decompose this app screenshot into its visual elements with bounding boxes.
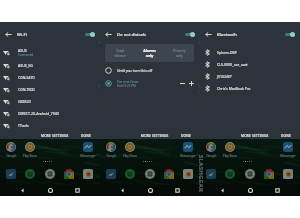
button[interactable]: Alarms only bbox=[134, 44, 164, 62]
button[interactable]: Home bbox=[246, 186, 255, 195]
button[interactable]: ASUS bbox=[0, 45, 100, 59]
button[interactable]: GSB523 bbox=[0, 95, 100, 107]
button[interactable]: Spotify bbox=[20, 167, 40, 181]
button[interactable]: Twitter bbox=[1, 167, 21, 181]
staticText: ASUS_5G bbox=[18, 63, 33, 68]
button[interactable]: Google bbox=[101, 142, 121, 158]
button[interactable]: Decrease bbox=[178, 79, 187, 88]
staticText: DONE bbox=[281, 134, 291, 138]
staticText: CGN-7600 bbox=[18, 87, 35, 92]
staticText: Google bbox=[106, 154, 117, 158]
button[interactable]: Back bbox=[218, 186, 227, 195]
button[interactable]: Camera bbox=[278, 167, 298, 181]
button[interactable]: Chrome bbox=[159, 167, 179, 181]
button[interactable]: CLS-0900_nar_uart bbox=[200, 58, 300, 70]
button[interactable]: Camera bbox=[78, 167, 98, 181]
staticText: CGN-5470 bbox=[18, 75, 35, 80]
button[interactable]: Until you turn this off bbox=[100, 64, 200, 77]
staticText: For one hour bbox=[117, 79, 139, 84]
button[interactable]: Messenger bbox=[278, 142, 298, 158]
staticText: JS1024E7 bbox=[217, 74, 232, 79]
button[interactable]: Spotify bbox=[120, 167, 140, 181]
button[interactable]: Google bbox=[1, 142, 21, 158]
staticText: Google bbox=[206, 154, 217, 158]
button[interactable]: Back bbox=[202, 28, 214, 40]
staticText: Play Store bbox=[123, 154, 137, 158]
button[interactable]: All apps bbox=[140, 167, 160, 181]
button[interactable]: Camera bbox=[178, 167, 198, 181]
button[interactable]: Twitter bbox=[101, 167, 121, 181]
staticText: MORE SETTINGS bbox=[241, 134, 269, 138]
button[interactable]: Priority only bbox=[164, 44, 194, 62]
button[interactable]: All apps bbox=[40, 167, 60, 181]
button[interactable]: Toggle bbox=[185, 31, 195, 37]
button[interactable]: For one hour bbox=[100, 77, 200, 90]
button[interactable]: MORE SETTINGS bbox=[239, 131, 271, 141]
button[interactable]: MORE SETTINGS bbox=[139, 131, 171, 141]
staticText: Play Store bbox=[23, 154, 37, 158]
button[interactable]: DONE bbox=[79, 131, 93, 141]
button[interactable]: Messenger bbox=[178, 142, 198, 158]
staticText: Messenger bbox=[280, 154, 296, 158]
button[interactable]: Recents bbox=[73, 186, 82, 195]
staticText: MORE SETTINGS bbox=[41, 134, 69, 138]
staticText: Connected bbox=[18, 53, 34, 57]
staticText: Google bbox=[6, 154, 17, 158]
button[interactable]: CGN-7600 bbox=[0, 83, 100, 95]
staticText: ASUS bbox=[18, 48, 27, 53]
button[interactable]: Back bbox=[102, 28, 114, 40]
staticText: Until you turn this off bbox=[117, 68, 153, 73]
button[interactable]: Home bbox=[146, 186, 155, 195]
button[interactable]: Toggle bbox=[285, 31, 295, 37]
button[interactable]: Sphero-ORP bbox=[200, 46, 300, 58]
button[interactable]: Chrome bbox=[259, 167, 279, 181]
button[interactable]: Chrome bbox=[59, 167, 79, 181]
button[interactable]: Messenger bbox=[78, 142, 98, 158]
staticText: MORE SETTINGS bbox=[141, 134, 169, 138]
staticText: Alarms only bbox=[143, 48, 156, 58]
staticText: Priority only bbox=[173, 48, 186, 58]
button[interactable]: DONE bbox=[179, 131, 193, 141]
button[interactable]: DIRECT-20-Android_7940 bbox=[0, 107, 100, 119]
staticText: TTwrls bbox=[18, 123, 29, 128]
staticText: Messenger bbox=[180, 154, 196, 158]
staticText: Do not disturb bbox=[117, 32, 146, 38]
staticText: DONE bbox=[81, 134, 91, 138]
button[interactable]: Recents bbox=[273, 186, 282, 195]
staticText: SLASHGEAR bbox=[197, 155, 205, 193]
staticText: Until 5:23 PM bbox=[117, 84, 136, 88]
button[interactable]: Back bbox=[18, 186, 27, 195]
button[interactable]: All apps bbox=[240, 167, 260, 181]
staticText: Wi-Fi bbox=[17, 32, 27, 38]
button[interactable]: ASUS_5G bbox=[0, 59, 100, 71]
staticText: Chris's MacBook Pro bbox=[217, 86, 251, 91]
button[interactable]: Play Store bbox=[120, 142, 140, 158]
button[interactable]: Home bbox=[46, 186, 55, 195]
staticText: DIRECT-20-Android_7940 bbox=[18, 111, 59, 116]
staticText: Messenger bbox=[80, 154, 96, 158]
button[interactable]: TTwrls bbox=[0, 119, 100, 131]
staticText: Bluetooth bbox=[217, 32, 237, 38]
staticText: Total silence bbox=[114, 48, 126, 58]
button[interactable]: Back bbox=[2, 28, 14, 40]
button[interactable]: Back bbox=[118, 186, 127, 195]
button[interactable]: Twitter bbox=[201, 167, 221, 181]
button[interactable]: Spotify bbox=[220, 167, 240, 181]
staticText: DONE bbox=[181, 134, 191, 138]
button[interactable]: MORE SETTINGS bbox=[39, 131, 71, 141]
button[interactable]: Recents bbox=[173, 186, 182, 195]
button[interactable]: Total silence bbox=[105, 44, 134, 62]
staticText: GSB523 bbox=[18, 99, 31, 104]
staticText: Sphero-ORP bbox=[217, 50, 237, 55]
staticText: CLS-0900_nar_uart bbox=[217, 62, 248, 67]
button[interactable]: CGN-5470 bbox=[0, 71, 100, 83]
button[interactable]: Chris's MacBook Pro bbox=[200, 82, 300, 94]
button[interactable]: Play Store bbox=[220, 142, 240, 158]
button[interactable]: JS1024E7 bbox=[200, 70, 300, 82]
button[interactable]: Google bbox=[201, 142, 221, 158]
button[interactable]: Increase bbox=[187, 79, 196, 88]
button[interactable]: Toggle bbox=[85, 31, 95, 37]
staticText: Play Store bbox=[223, 154, 237, 158]
button[interactable]: Play Store bbox=[20, 142, 40, 158]
button[interactable]: DONE bbox=[279, 131, 293, 141]
